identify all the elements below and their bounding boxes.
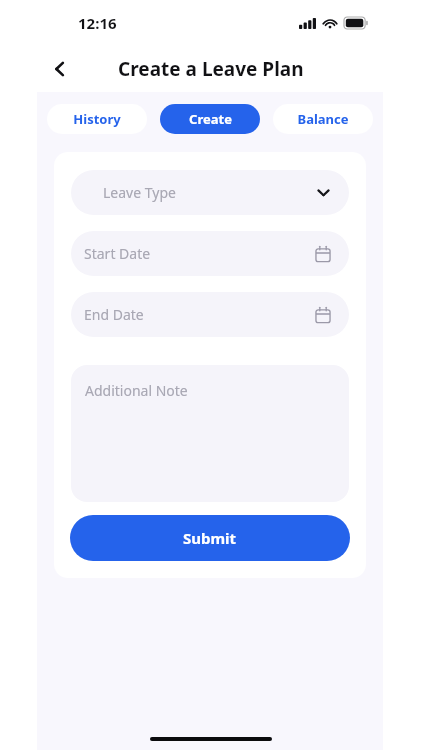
button[interactable]: Additional Note xyxy=(71,365,349,502)
staticText: History xyxy=(73,110,121,128)
button[interactable]: Back xyxy=(42,51,78,87)
button[interactable]: Submit xyxy=(70,515,350,561)
staticText: 12:16 xyxy=(78,13,117,33)
staticText: End Date xyxy=(84,305,144,324)
button[interactable]: Open leave type list xyxy=(71,170,349,215)
staticText: Submit xyxy=(183,528,237,548)
staticText: Balance xyxy=(297,110,349,128)
staticText: Create xyxy=(189,110,232,128)
button[interactable]: History xyxy=(47,104,147,134)
staticText: Start Date xyxy=(84,244,151,263)
staticText: Create a Leave Plan xyxy=(118,56,304,82)
button[interactable]: Create xyxy=(160,104,260,134)
staticText: Additional Note xyxy=(85,381,188,400)
button[interactable]: Pick end date xyxy=(71,292,349,337)
button[interactable]: Pick start date xyxy=(71,231,349,276)
staticText: Leave Type xyxy=(103,183,176,202)
button[interactable]: Balance xyxy=(273,104,373,134)
